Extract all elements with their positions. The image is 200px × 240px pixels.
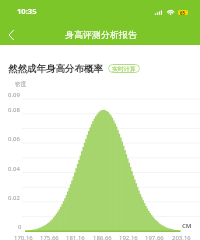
staticText: CM bbox=[182, 222, 192, 230]
staticText: 181.16 bbox=[66, 234, 85, 240]
staticText: 65 bbox=[180, 10, 186, 15]
staticText: 197.66 bbox=[145, 234, 164, 240]
staticText: 然然成年身高分布概率 bbox=[8, 63, 103, 75]
staticText: 0.08 bbox=[8, 106, 20, 114]
staticText: 0.02 bbox=[8, 194, 20, 202]
staticText: 身高评测分析报告 bbox=[65, 29, 137, 40]
button[interactable]: Back bbox=[3, 27, 19, 43]
staticText: 170.16 bbox=[14, 234, 33, 240]
staticText: 密度 bbox=[15, 81, 27, 88]
staticText: 175.66 bbox=[40, 234, 59, 240]
staticText: 0.09 bbox=[8, 91, 20, 99]
button[interactable]: 实时计算 bbox=[108, 64, 140, 73]
staticText: 0.06 bbox=[8, 135, 20, 143]
staticText: 实时计算 bbox=[112, 65, 136, 72]
staticText: 186.66 bbox=[93, 234, 112, 240]
staticText: 192.16 bbox=[119, 234, 138, 240]
staticText: 10:35 bbox=[17, 6, 37, 16]
staticText: 0 bbox=[18, 223, 22, 231]
staticText: 0.04 bbox=[8, 165, 20, 173]
staticText: 203.16 bbox=[172, 234, 191, 240]
